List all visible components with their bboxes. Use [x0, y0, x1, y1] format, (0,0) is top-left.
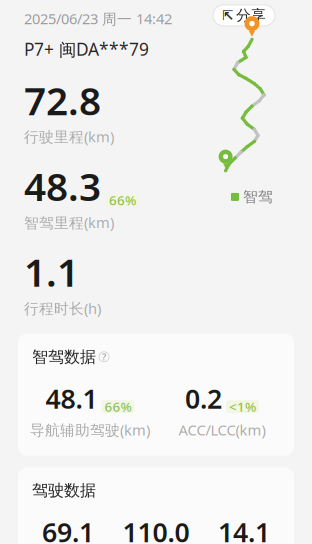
staticText: 14.1: [218, 514, 270, 544]
staticText: ▾: [223, 159, 228, 171]
staticText: P7+ 闽DA***79: [24, 37, 149, 60]
staticText: 智驾数据: [32, 347, 96, 367]
staticText: 69.1: [42, 514, 94, 544]
button[interactable]: ⇱: [213, 5, 275, 26]
staticText: 2025/06/23 周一 14:42: [24, 9, 172, 28]
staticText: ▾: [249, 26, 255, 40]
staticText: 72.8: [24, 74, 101, 126]
staticText: ⇱: [222, 8, 233, 23]
staticText: 110.0: [122, 514, 189, 544]
staticText: ?: [102, 351, 106, 363]
staticText: 0.2: [185, 381, 222, 416]
staticText: 行程时长(h): [24, 298, 101, 318]
staticText: 48.3: [24, 160, 101, 212]
staticText: 导航辅助驾驶(km): [30, 420, 150, 439]
staticText: 1.1: [24, 246, 79, 297]
staticText: <1%: [229, 398, 256, 415]
staticText: 智驾: [243, 188, 273, 206]
staticText: 驾驶数据: [32, 480, 96, 500]
button[interactable]: 说明: [99, 352, 109, 362]
staticText: ACC/LCC(km): [178, 420, 265, 439]
staticText: 66%: [109, 191, 136, 209]
staticText: 分享: [236, 6, 266, 24]
staticText: 66%: [104, 398, 131, 415]
staticText: 智驾里程(km): [24, 213, 114, 232]
staticText: 48.1: [45, 381, 97, 416]
staticText: 行驶里程(km): [24, 127, 114, 146]
